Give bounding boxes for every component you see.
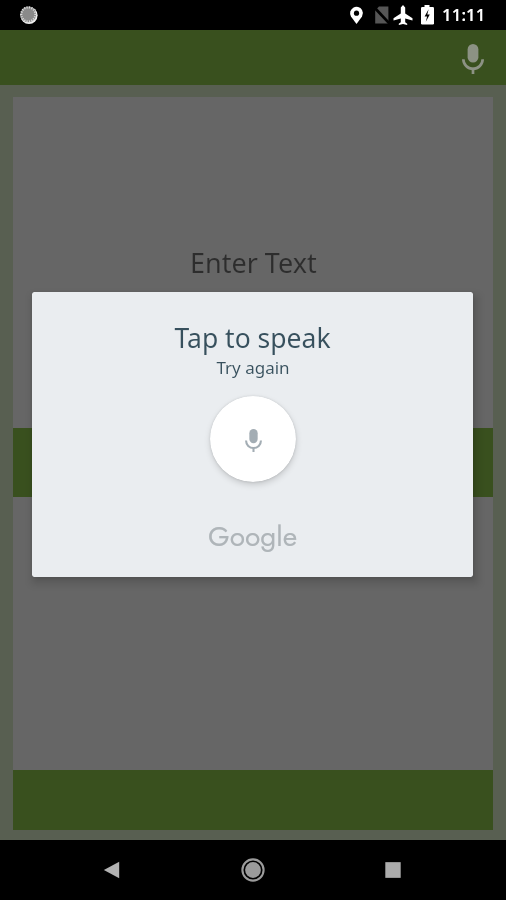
staticText: 11:11	[442, 3, 486, 26]
button[interactable]: Recents	[369, 846, 417, 894]
button[interactable]	[13, 428, 493, 497]
staticText: Tap to speak	[174, 320, 331, 356]
button[interactable]: Enter Text	[13, 236, 493, 288]
staticText: Enter Text	[190, 244, 317, 281]
button[interactable]: Back	[88, 846, 136, 894]
staticText: Google	[208, 516, 298, 556]
button[interactable]: Home	[229, 846, 277, 894]
button[interactable]: Speak	[210, 396, 296, 482]
button[interactable]: Voice search	[452, 38, 494, 80]
staticText: Try again	[216, 356, 290, 379]
